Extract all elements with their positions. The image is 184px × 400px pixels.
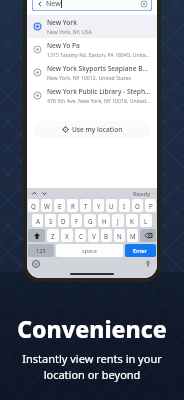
staticText: H xyxy=(102,217,107,225)
staticText: C xyxy=(79,232,83,240)
button[interactable]: I xyxy=(119,199,130,212)
button[interactable]: Back xyxy=(32,0,152,11)
staticText: U xyxy=(109,202,114,210)
button[interactable]: G xyxy=(84,214,96,227)
staticText: L xyxy=(144,217,148,225)
staticText: V xyxy=(92,232,96,240)
button[interactable]: Previous xyxy=(31,190,38,197)
button[interactable]: Next xyxy=(41,190,48,197)
staticText: M xyxy=(130,232,136,240)
button[interactable]: R xyxy=(67,199,78,212)
button[interactable]: N xyxy=(114,229,125,242)
staticText: G xyxy=(88,217,93,225)
button[interactable]: Backspace xyxy=(140,229,156,242)
button[interactable]: P xyxy=(145,199,156,212)
button[interactable]: K xyxy=(126,214,138,227)
button[interactable]: F xyxy=(71,214,82,227)
button[interactable]: U xyxy=(106,199,117,212)
button[interactable]: New York xyxy=(27,15,157,38)
button[interactable]: Voice input xyxy=(144,260,152,268)
button[interactable]: C xyxy=(75,229,86,242)
staticText: New York, NY, USA xyxy=(47,28,92,35)
button[interactable]: J xyxy=(112,214,124,227)
staticText: R xyxy=(71,202,75,210)
staticText: New Yo Pa xyxy=(47,41,80,50)
staticText: J xyxy=(117,217,119,225)
button[interactable]: E xyxy=(54,199,65,212)
staticText: Z xyxy=(51,232,55,240)
staticText: 123 xyxy=(36,247,46,254)
button[interactable]: A xyxy=(32,214,43,227)
staticText: E xyxy=(58,202,62,210)
button[interactable]: Z xyxy=(47,229,59,242)
staticText: Q xyxy=(31,202,36,210)
button[interactable]: New Yo Pa xyxy=(27,38,157,61)
button[interactable]: T xyxy=(80,199,91,212)
staticText: P xyxy=(149,202,153,210)
button[interactable]: 123 xyxy=(28,244,54,257)
button[interactable]: Emoji xyxy=(32,260,40,268)
staticText: Convenience xyxy=(17,313,167,344)
staticText: New York Skyports Seaplane Base xyxy=(47,64,151,73)
button[interactable]: D xyxy=(58,214,69,227)
staticText: 476 5th Ave, New York, NY 10018, United … xyxy=(47,97,151,104)
staticText: 1315 Tatamy Rd, Easton, PA 18045, United… xyxy=(47,51,151,58)
staticText: New York Public Library - Stephen A. Sch… xyxy=(47,87,151,96)
button[interactable]: S xyxy=(45,214,56,227)
staticText: I xyxy=(123,202,126,210)
staticText: T xyxy=(84,202,88,210)
staticText: Ready xyxy=(133,190,151,198)
staticText: S xyxy=(49,217,53,225)
button[interactable]: Enter xyxy=(125,244,156,257)
staticText: New xyxy=(46,0,61,9)
button[interactable]: X xyxy=(61,229,73,242)
staticText: New York, NY 10012, United States xyxy=(47,74,132,81)
staticText: space xyxy=(82,247,97,254)
button[interactable]: H xyxy=(98,214,110,227)
staticText: D xyxy=(61,217,66,225)
button[interactable]: Clear xyxy=(140,0,148,8)
staticText: N xyxy=(117,232,122,240)
button[interactable]: V xyxy=(88,229,99,242)
button[interactable]: Shift xyxy=(28,229,45,242)
button[interactable]: Q xyxy=(28,199,39,212)
button[interactable]: L xyxy=(140,214,152,227)
staticText: F xyxy=(75,217,79,225)
button[interactable]: Y xyxy=(93,199,104,212)
staticText: Enter xyxy=(133,247,148,254)
button[interactable]: B xyxy=(101,229,112,242)
button[interactable]: space xyxy=(56,244,123,257)
button[interactable]: Use my location xyxy=(34,121,150,138)
staticText: W xyxy=(44,202,50,210)
button[interactable]: M xyxy=(127,229,138,242)
button[interactable]: Ready xyxy=(131,190,153,198)
staticText: K xyxy=(130,217,134,225)
staticText: X xyxy=(65,232,69,240)
staticText: O xyxy=(135,202,140,210)
button[interactable]: Back xyxy=(36,0,44,8)
button[interactable]: O xyxy=(132,199,143,212)
button[interactable]: New York Public Library - Stephen A. Sch… xyxy=(27,84,157,107)
staticText: New York xyxy=(47,18,77,27)
staticText: Y xyxy=(97,202,101,210)
staticText: B xyxy=(104,232,109,240)
button[interactable]: W xyxy=(41,199,52,212)
staticText: Instantly view rents in your location or… xyxy=(22,351,162,382)
button[interactable]: New York Skyports Seaplane Base xyxy=(27,61,157,84)
staticText: Use my location xyxy=(72,125,123,134)
staticText: A xyxy=(36,217,40,225)
